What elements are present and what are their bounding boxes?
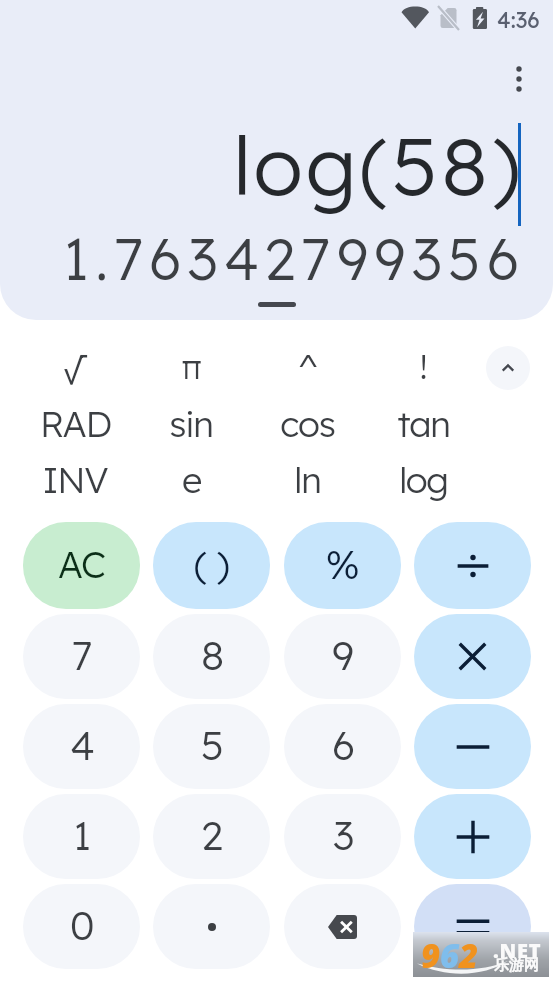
button[interactable]: 1 [23,794,140,879]
staticText: 2 [459,933,478,978]
staticText: RAD [40,401,111,446]
button[interactable]: 4 [23,704,140,789]
button[interactable]: ( ) [153,522,270,609]
staticText: 6 [440,933,459,978]
button[interactable]: log [369,452,477,506]
staticText: 9 [332,630,353,680]
staticText: ( ) [194,540,229,588]
button[interactable]: % [284,522,401,609]
button[interactable]: ! [369,339,477,393]
staticText: log(58) [233,114,524,215]
staticText: 1 [73,810,91,860]
button[interactable]: 7 [23,614,140,699]
staticText: 4 [70,720,94,770]
staticText: INV [42,457,108,502]
button[interactable]: INV [21,452,129,506]
staticText: √ [63,344,87,389]
staticText: 乐游网 [494,956,539,975]
button[interactable]: AC [23,522,140,609]
button[interactable]: tan [369,396,477,450]
staticText: e [182,457,201,502]
staticText: tan [397,401,450,446]
button[interactable]: π [137,339,245,393]
staticText: cos [280,401,335,446]
staticText: 1.76342799356 [63,223,526,294]
button[interactable]: 2 [153,794,270,879]
button[interactable]: cos [253,396,361,450]
button[interactable]: Decimal point [153,884,270,969]
button[interactable]: Equals [414,884,531,969]
button[interactable]: ln [253,452,361,506]
button[interactable]: Collapse keypad [486,346,530,390]
staticText: 0 [70,900,94,950]
button[interactable]: Subtract [414,704,531,789]
staticText: sin [169,401,213,446]
button[interactable]: √ [21,339,129,393]
staticText: ^ [298,345,317,388]
staticText: 9 [421,933,440,978]
button[interactable]: 8 [153,614,270,699]
button[interactable]: Multiply [414,614,531,699]
staticText: 4:36 [497,6,540,34]
button[interactable]: Backspace [284,884,401,969]
button[interactable]: 6 [284,704,401,789]
staticText: ! [419,345,427,388]
staticText: % [326,539,359,589]
button[interactable]: ^ [253,339,361,393]
button[interactable]: Divide [414,522,531,609]
staticText: AC [58,541,105,587]
button[interactable]: e [137,452,245,506]
button[interactable]: 5 [153,704,270,789]
staticText: 3 [333,810,353,860]
button[interactable]: sin [137,396,245,450]
staticText: 7 [72,630,92,680]
staticText: π [181,345,201,388]
button[interactable]: 9 [284,614,401,699]
button[interactable]: Add [414,794,531,879]
staticText: .NET [493,937,542,964]
staticText: 5 [201,720,223,770]
staticText: 6 [332,720,354,770]
button[interactable]: RAD [21,396,129,450]
staticText: 8 [201,630,223,680]
button[interactable]: More options [495,55,543,103]
staticText: ln [294,457,321,502]
button[interactable]: 3 [284,794,401,879]
button[interactable]: 0 [23,884,140,969]
staticText: 2 [201,810,222,860]
staticText: log [399,457,448,502]
